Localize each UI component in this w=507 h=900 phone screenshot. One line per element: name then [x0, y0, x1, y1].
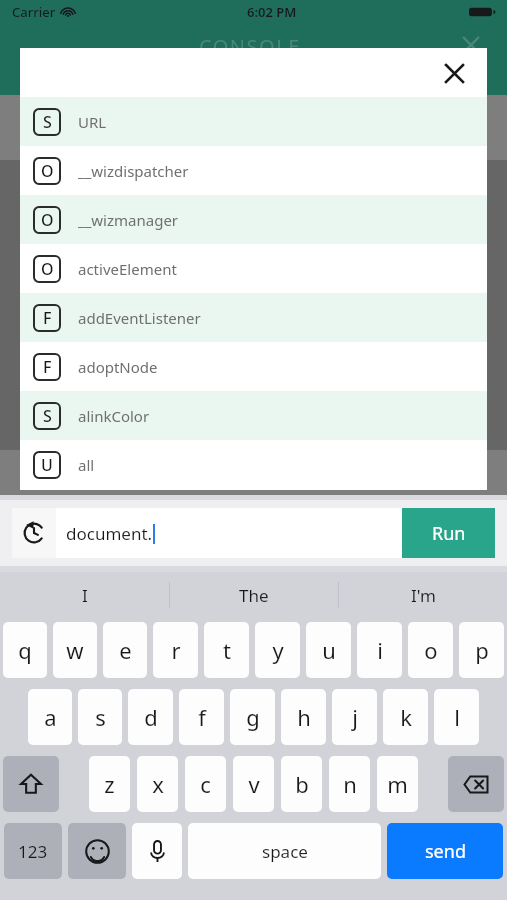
staticText: z [104, 769, 115, 799]
button[interactable]: S [20, 97, 487, 146]
button[interactable]: i [357, 622, 402, 678]
staticText: m [387, 769, 408, 799]
staticText: b [295, 769, 309, 799]
button[interactable]: Shift [3, 756, 59, 812]
button[interactable]: z [89, 756, 130, 812]
button[interactable]: O [20, 195, 487, 244]
button[interactable]: O [20, 146, 487, 195]
button[interactable]: History [12, 508, 56, 558]
staticText: I'm [411, 584, 436, 607]
staticText: all [78, 455, 95, 475]
button[interactable]: b [281, 756, 322, 812]
staticText: F [43, 356, 52, 378]
button[interactable]: Run [402, 508, 495, 558]
staticText: t [223, 635, 231, 665]
button[interactable]: Emoji [68, 823, 126, 879]
button[interactable]: m [377, 756, 418, 812]
button[interactable]: u [306, 622, 351, 678]
button[interactable]: o [408, 622, 453, 678]
button[interactable]: 123 [4, 823, 62, 879]
staticText: alinkColor [78, 406, 150, 426]
staticText: O [41, 209, 54, 231]
staticText: e [119, 635, 132, 665]
button[interactable]: d [128, 689, 173, 745]
staticText: h [297, 702, 311, 732]
staticText: d [144, 702, 158, 732]
button[interactable]: a [28, 689, 72, 745]
staticText: S [43, 111, 52, 133]
staticText: space [262, 840, 308, 863]
button[interactable]: l [434, 689, 479, 745]
button[interactable]: S [20, 391, 487, 440]
button[interactable]: f [179, 689, 224, 745]
button[interactable]: x [137, 756, 178, 812]
staticText: document. [66, 522, 153, 545]
staticText: u [322, 635, 336, 665]
button[interactable]: g [230, 689, 275, 745]
staticText: w [66, 635, 84, 665]
staticText: k [400, 702, 412, 732]
staticText: y [272, 635, 284, 665]
staticText: q [18, 635, 32, 665]
staticText: o [424, 635, 438, 665]
button[interactable]: h [281, 689, 326, 745]
staticText: O [41, 160, 54, 182]
staticText: F [43, 307, 52, 329]
staticText: i [377, 635, 383, 665]
staticText: __wizdispatcher [78, 161, 189, 181]
staticText: r [171, 635, 181, 665]
button[interactable]: F [20, 342, 487, 391]
staticText: v [248, 769, 260, 799]
staticText: __wizmanager [78, 210, 179, 230]
button[interactable]: r [153, 622, 198, 678]
button[interactable]: q [3, 622, 47, 678]
button[interactable]: O [20, 244, 487, 293]
button[interactable]: y [255, 622, 300, 678]
staticText: l [454, 702, 460, 732]
staticText: The [239, 584, 269, 607]
staticText: n [343, 769, 357, 799]
button[interactable]: c [185, 756, 226, 812]
staticText: f [198, 702, 206, 732]
staticText: x [152, 769, 164, 799]
staticText: c [200, 769, 211, 799]
staticText: 123 [18, 840, 48, 863]
button[interactable]: t [204, 622, 249, 678]
staticText: 6:02 PM [247, 3, 297, 21]
staticText: S [43, 405, 52, 427]
button[interactable]: send [387, 823, 503, 879]
button[interactable]: I [0, 572, 169, 618]
button[interactable]: w [53, 622, 97, 678]
staticText: s [95, 702, 106, 732]
button[interactable]: I'm [339, 572, 507, 618]
button[interactable]: Backspace [448, 756, 504, 812]
button[interactable]: v [233, 756, 274, 812]
button[interactable]: s [78, 689, 122, 745]
staticText: Run [432, 521, 466, 546]
staticText: a [44, 702, 57, 732]
button[interactable]: Dictation [132, 823, 182, 879]
staticText: URL [78, 112, 107, 132]
staticText: addEventListener [78, 308, 201, 328]
button[interactable]: k [383, 689, 428, 745]
button[interactable]: The [170, 572, 338, 618]
staticText: g [246, 702, 260, 732]
button[interactable]: j [332, 689, 377, 745]
staticText: I [82, 584, 88, 607]
button[interactable]: U [20, 440, 487, 489]
staticText: p [475, 635, 489, 665]
staticText: O [41, 258, 54, 280]
staticText: adoptNode [78, 357, 158, 377]
button[interactable]: space [188, 823, 381, 879]
button[interactable]: n [329, 756, 370, 812]
staticText: send [425, 839, 466, 864]
staticText: activeElement [78, 259, 177, 279]
staticText: Carrier [12, 3, 56, 21]
button[interactable]: Close [433, 52, 475, 94]
staticText: j [352, 702, 358, 732]
button[interactable]: p [459, 622, 504, 678]
button[interactable]: document. [56, 508, 402, 558]
button[interactable]: e [103, 622, 147, 678]
staticText: U [41, 454, 53, 476]
button[interactable]: F [20, 293, 487, 342]
